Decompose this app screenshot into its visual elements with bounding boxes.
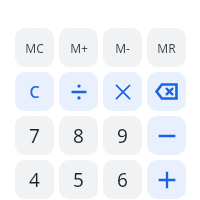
staticText: 5 [73, 167, 84, 193]
staticText: M- [115, 40, 130, 56]
staticText: M+ [70, 40, 88, 56]
button[interactable]: Multiply [103, 72, 142, 111]
button[interactable]: 7 [15, 116, 54, 155]
staticText: 6 [117, 167, 128, 193]
button[interactable]: Backspace [147, 72, 186, 111]
staticText: C [29, 81, 40, 103]
button[interactable]: 5 [59, 160, 98, 199]
button[interactable]: MC [15, 28, 54, 67]
button[interactable]: MR [147, 28, 186, 67]
button[interactable]: Add [147, 160, 186, 199]
staticText: MR [157, 40, 176, 56]
button[interactable]: 9 [103, 116, 142, 155]
staticText: 4 [29, 167, 40, 193]
button[interactable]: 4 [15, 160, 54, 199]
staticText: 9 [117, 123, 128, 149]
staticText: 7 [29, 123, 40, 149]
button[interactable]: 6 [103, 160, 142, 199]
button[interactable]: 8 [59, 116, 98, 155]
button[interactable]: M+ [59, 28, 98, 67]
staticText: 8 [73, 123, 84, 149]
button[interactable]: C [15, 72, 54, 111]
button[interactable]: M- [103, 28, 142, 67]
button[interactable]: Subtract [147, 116, 186, 155]
button[interactable]: Divide [59, 72, 98, 111]
staticText: MC [25, 40, 44, 56]
